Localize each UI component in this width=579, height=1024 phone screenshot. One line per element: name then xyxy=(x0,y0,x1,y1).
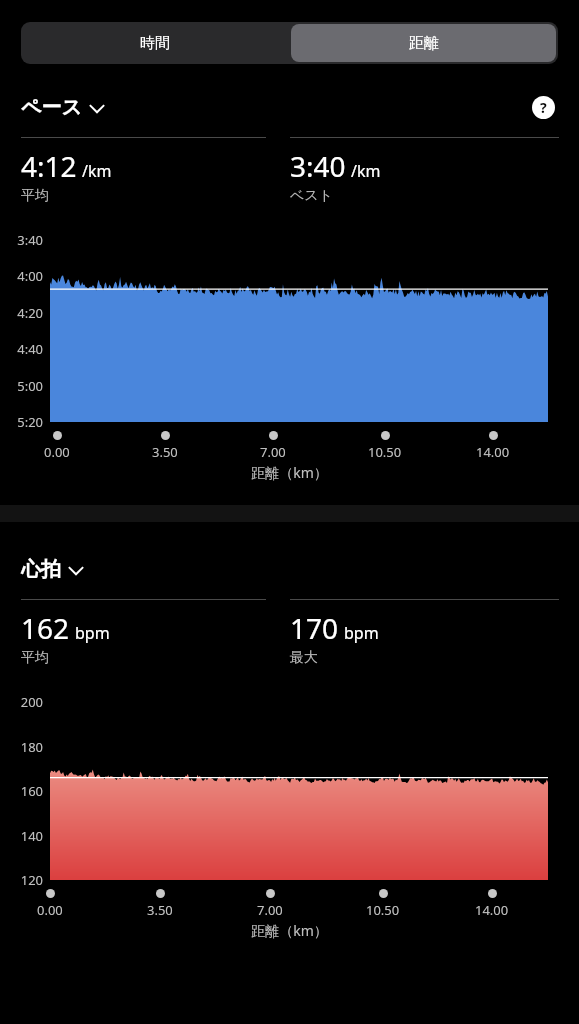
staticText: 14.00 xyxy=(475,901,509,917)
staticText: 0.00 xyxy=(37,901,63,917)
staticText: 心拍 xyxy=(21,557,61,582)
staticText: bpm xyxy=(344,622,379,644)
staticText: 7.00 xyxy=(260,443,286,459)
staticText: 162 xyxy=(21,609,70,647)
staticText: 3:40 xyxy=(290,147,346,185)
staticText: 時間 xyxy=(140,34,170,53)
staticText: 10.50 xyxy=(366,901,400,917)
button[interactable]: ペース xyxy=(21,95,106,120)
staticText: 7.00 xyxy=(257,901,283,917)
staticText: 最大 xyxy=(290,649,318,667)
staticText: bpm xyxy=(75,622,110,644)
button[interactable]: Help xyxy=(531,95,555,119)
button[interactable]: 心拍 xyxy=(21,557,85,582)
staticText: 5:00 xyxy=(0,377,43,395)
staticText: 距離（km） xyxy=(0,921,579,940)
button[interactable]: 距離 xyxy=(291,24,556,62)
staticText: ? xyxy=(540,98,547,117)
staticText: 距離（km） xyxy=(0,463,579,482)
staticText: 10.50 xyxy=(368,443,402,459)
staticText: 平均 xyxy=(21,187,49,205)
staticText: 3.50 xyxy=(147,901,173,917)
staticText: 14.00 xyxy=(476,443,510,459)
staticText: ペース xyxy=(21,95,82,120)
staticText: 4:40 xyxy=(0,340,43,358)
staticText: 120 xyxy=(0,871,43,889)
staticText: 200 xyxy=(0,693,43,711)
staticText: ベスト xyxy=(290,187,333,205)
staticText: 3.50 xyxy=(152,443,178,459)
staticText: 4:00 xyxy=(0,267,43,285)
staticText: 4:12 xyxy=(21,147,77,185)
staticText: 3:40 xyxy=(0,231,43,249)
staticText: 平均 xyxy=(21,649,49,667)
staticText: 4:20 xyxy=(0,304,43,322)
staticText: 170 xyxy=(290,609,339,647)
staticText: 180 xyxy=(0,738,43,756)
staticText: /km xyxy=(82,160,112,182)
staticText: 160 xyxy=(0,782,43,800)
staticText: 140 xyxy=(0,827,43,845)
staticText: 0.00 xyxy=(44,443,70,459)
staticText: /km xyxy=(351,160,381,182)
staticText: 5:20 xyxy=(0,413,43,431)
staticText: 距離 xyxy=(409,34,439,53)
button[interactable]: 時間 xyxy=(21,22,289,64)
